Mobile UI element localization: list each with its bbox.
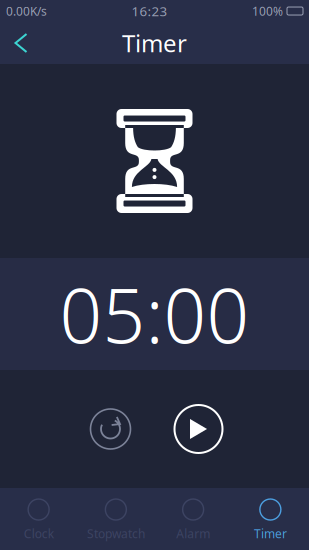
- button[interactable]: Alarm: [154, 488, 232, 550]
- staticText: Timer: [122, 27, 187, 59]
- staticText: Alarm: [176, 525, 210, 541]
- staticText: Clock: [24, 525, 54, 541]
- staticText: 0.00K/s: [6, 3, 47, 19]
- button[interactable]: Back: [0, 22, 42, 64]
- button[interactable]: Reset: [83, 402, 137, 456]
- button[interactable]: Timer: [232, 488, 309, 550]
- button[interactable]: Start: [171, 402, 225, 456]
- staticText: 100%: [252, 3, 283, 19]
- button[interactable]: Stopwatch: [77, 488, 154, 550]
- staticText: Stopwatch: [87, 525, 145, 541]
- staticText: 05:00: [59, 264, 249, 364]
- staticText: 16:23: [131, 2, 167, 20]
- staticText: Timer: [254, 525, 287, 541]
- button[interactable]: Clock: [0, 488, 77, 550]
